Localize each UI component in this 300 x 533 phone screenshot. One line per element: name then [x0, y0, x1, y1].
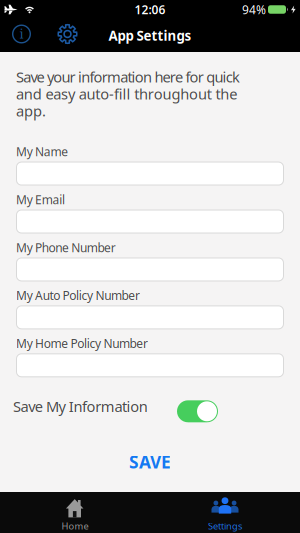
- staticText: My Name: [16, 144, 68, 159]
- button[interactable]: Save My Information: [177, 400, 218, 422]
- staticText: App Settings: [108, 27, 191, 44]
- staticText: My Phone Number: [16, 239, 116, 255]
- staticText: My Email: [16, 192, 65, 207]
- button[interactable]: Text field: [16, 305, 284, 329]
- button[interactable]: Settings: [150, 492, 300, 533]
- button[interactable]: Information: [12, 24, 31, 43]
- staticText: Save your information here for quick: [16, 67, 240, 86]
- staticText: i: [19, 27, 23, 41]
- button[interactable]: Settings: [57, 23, 78, 44]
- button[interactable]: Text field: [16, 353, 284, 377]
- staticText: 12:06: [134, 1, 165, 17]
- staticText: Save My Information: [13, 397, 148, 416]
- staticText: and easy auto-fill throughout the: [16, 84, 237, 104]
- button[interactable]: Text field: [16, 209, 284, 233]
- button[interactable]: SAVE: [129, 450, 171, 473]
- staticText: My Auto Policy Number: [16, 287, 140, 303]
- staticText: SAVE: [129, 450, 171, 473]
- staticText: 94%: [242, 1, 266, 17]
- button[interactable]: Home: [0, 492, 150, 533]
- button[interactable]: Text field: [16, 162, 284, 186]
- staticText: Home: [61, 520, 88, 532]
- staticText: app.: [16, 101, 46, 121]
- button[interactable]: Text field: [16, 257, 284, 281]
- staticText: Settings: [208, 520, 242, 532]
- staticText: My Home Policy Number: [16, 335, 148, 351]
